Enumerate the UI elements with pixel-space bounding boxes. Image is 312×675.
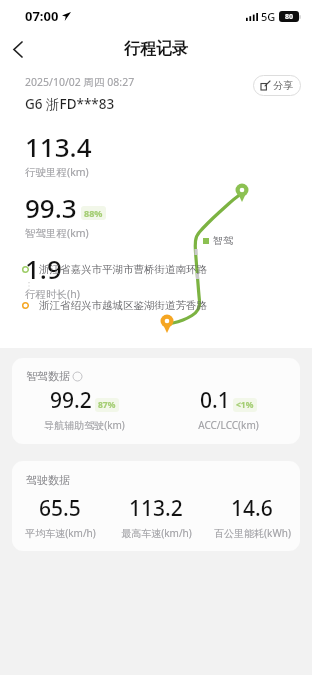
staticText: 智驾 bbox=[213, 234, 233, 247]
staticText: 浙江省绍兴市越城区鉴湖街道芳香路 bbox=[39, 299, 207, 312]
staticText: 2025/10/02 周四 08:27 bbox=[25, 75, 135, 89]
staticText: 1.9 bbox=[25, 251, 62, 286]
staticText: 行程记录 bbox=[124, 39, 188, 59]
button[interactable]: 分享 bbox=[253, 75, 301, 96]
staticText: 88% bbox=[84, 207, 103, 219]
staticText: 驾驶数据 bbox=[26, 473, 70, 487]
staticText: 百公里能耗(kWh) bbox=[214, 526, 291, 540]
staticText: 113.2 bbox=[129, 494, 183, 523]
button[interactable]: 驾驶数据 bbox=[12, 461, 300, 551]
staticText: 07:00 bbox=[25, 7, 59, 25]
staticText: 分享 bbox=[273, 79, 293, 92]
staticText: 5G bbox=[261, 9, 276, 24]
staticText: 浙江省嘉兴市平湖市曹桥街道南环路 bbox=[39, 263, 207, 276]
staticText: 113.4 bbox=[25, 129, 92, 164]
staticText: 99.2 bbox=[50, 386, 92, 415]
staticText: 行程时长(h) bbox=[25, 287, 80, 301]
staticText: 行驶里程(km) bbox=[25, 165, 89, 179]
button[interactable]: Back bbox=[0, 32, 36, 66]
staticText: 87% bbox=[98, 399, 116, 411]
staticText: <1% bbox=[236, 399, 254, 411]
staticText: 65.5 bbox=[39, 494, 81, 523]
staticText: 智驾里程(km) bbox=[25, 226, 89, 240]
staticText: 最高车速(km/h) bbox=[121, 526, 192, 540]
staticText: 14.6 bbox=[231, 494, 273, 523]
staticText: 导航辅助驾驶(km) bbox=[44, 418, 125, 432]
button[interactable]: 智驾数据 bbox=[12, 358, 300, 444]
staticText: 平均车速(km/h) bbox=[25, 526, 96, 540]
staticText: 99.3 bbox=[25, 190, 77, 225]
staticText: G6 浙FD***83 bbox=[25, 95, 115, 113]
staticText: ACC/LCC(km) bbox=[198, 418, 259, 432]
staticText: 0.1 bbox=[200, 386, 230, 415]
staticText: 80 bbox=[285, 12, 294, 22]
staticText: 智驾数据 bbox=[26, 369, 70, 383]
